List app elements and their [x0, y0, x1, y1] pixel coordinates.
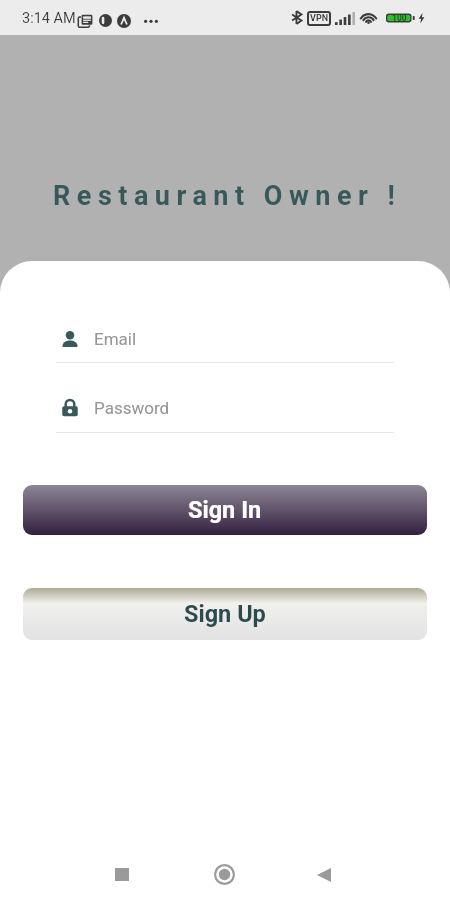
- button[interactable]: Password: [56, 387, 394, 433]
- button[interactable]: Back: [300, 851, 348, 899]
- staticText: Sign In: [188, 496, 262, 524]
- button[interactable]: Sign In: [23, 485, 427, 535]
- button[interactable]: Home: [200, 850, 248, 898]
- button[interactable]: Recent apps: [98, 850, 146, 898]
- staticText: Password: [94, 398, 170, 418]
- staticText: Restaurant Owner !: [53, 180, 402, 212]
- staticText: 3:14 AM: [22, 10, 76, 27]
- button[interactable]: Email: [56, 318, 394, 363]
- staticText: 100: [392, 13, 407, 23]
- staticText: VPN: [310, 13, 329, 24]
- staticText: Sign Up: [184, 600, 266, 628]
- staticText: Email: [94, 329, 137, 349]
- button[interactable]: Sign Up: [23, 588, 427, 640]
